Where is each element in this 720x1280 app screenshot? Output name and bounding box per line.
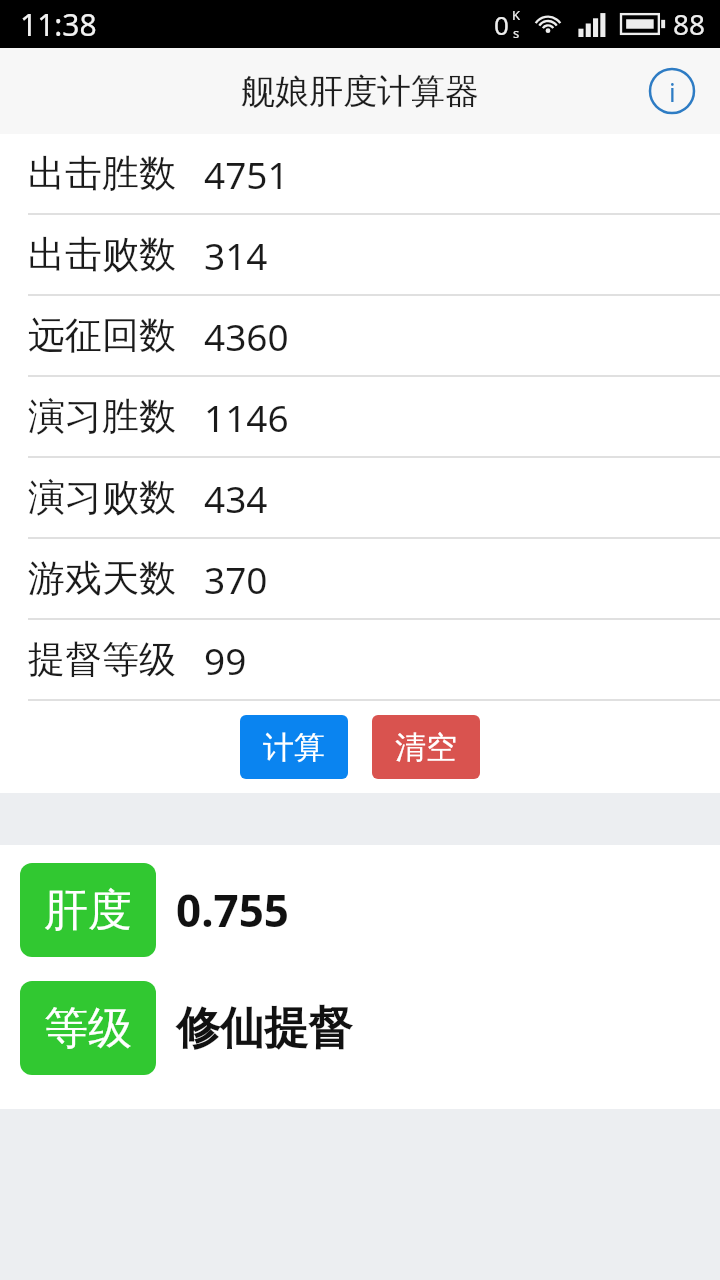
button[interactable]: 肝度	[0, 863, 720, 957]
button[interactable]: 清空	[372, 715, 480, 779]
staticText: 370	[204, 554, 268, 604]
staticText: 出击败数	[28, 231, 176, 278]
staticText: 计算	[263, 728, 325, 767]
staticText: 0	[494, 7, 509, 42]
staticText: 11:38	[20, 4, 97, 45]
button[interactable]: 计算	[240, 715, 348, 779]
staticText: 提督等级	[28, 636, 176, 683]
button[interactable]: 演习败数	[0, 458, 720, 537]
staticText: 4751	[204, 149, 289, 199]
button[interactable]: 远征回数	[0, 296, 720, 375]
staticText: 清空	[395, 728, 457, 767]
staticText: 游戏天数	[28, 555, 176, 602]
staticText: 314	[204, 230, 268, 280]
staticText: 99	[204, 635, 247, 685]
staticText: 88	[673, 5, 706, 43]
staticText: 4360	[204, 311, 289, 361]
button[interactable]: Info	[640, 59, 704, 123]
button[interactable]: 出击败数	[0, 215, 720, 294]
staticText: 肝度	[44, 883, 132, 938]
staticText: 演习胜数	[28, 393, 176, 440]
staticText: s	[513, 24, 520, 42]
staticText: i	[669, 74, 676, 109]
staticText: 演习败数	[28, 474, 176, 521]
button[interactable]: 演习胜数	[0, 377, 720, 456]
staticText: 0.755	[176, 880, 290, 940]
button[interactable]: 游戏天数	[0, 539, 720, 618]
staticText: 出击胜数	[28, 150, 176, 197]
button[interactable]: 等级	[0, 981, 720, 1075]
staticText: 1146	[204, 392, 289, 442]
staticText: 等级	[44, 1001, 132, 1056]
staticText: 434	[204, 473, 268, 523]
staticText: 舰娘肝度计算器	[241, 70, 479, 113]
staticText: 修仙提督	[176, 1001, 352, 1056]
staticText: 远征回数	[28, 312, 176, 359]
staticText: K	[512, 6, 521, 24]
button[interactable]: 提督等级	[0, 620, 720, 699]
button[interactable]: 出击胜数	[0, 134, 720, 213]
